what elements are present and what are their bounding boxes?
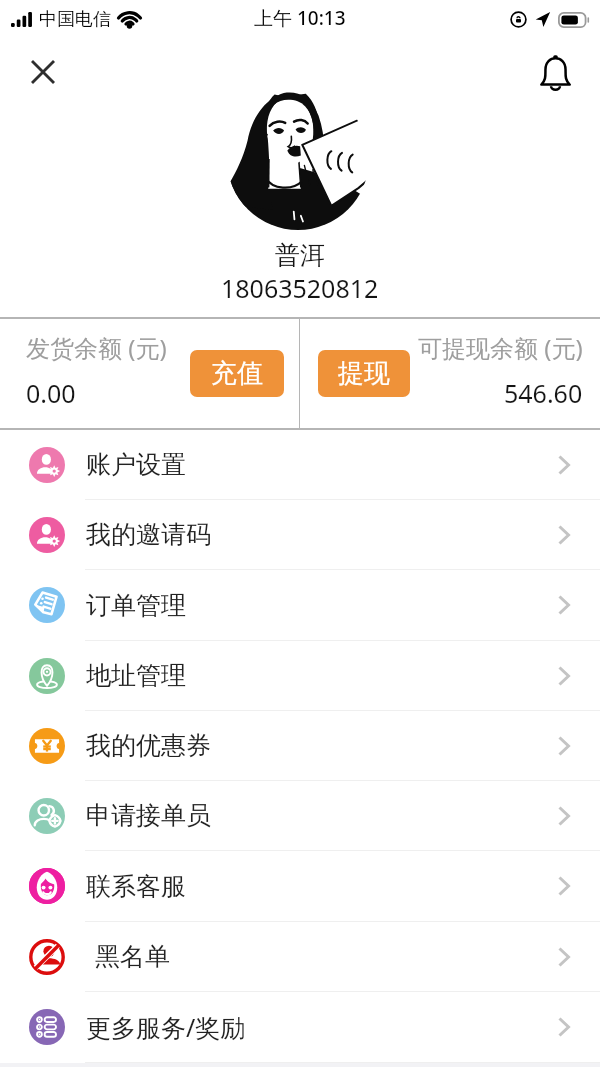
button[interactable]: 申请接单员 xyxy=(0,781,600,851)
staticText: 提现 xyxy=(338,357,390,390)
staticText: 地址管理 xyxy=(86,660,186,691)
button[interactable]: 提现 xyxy=(318,350,410,397)
button[interactable]: 充值 xyxy=(190,350,284,397)
staticText: 中国电信 xyxy=(39,8,111,31)
button[interactable]: 联系客服 xyxy=(0,851,600,922)
staticText: 账户设置 xyxy=(86,449,186,480)
button[interactable]: 地址管理 xyxy=(0,641,600,711)
staticText: 我的优惠券 xyxy=(86,730,211,761)
staticText: 我的邀请码 xyxy=(86,519,211,550)
staticText: 可提现余额 (元) xyxy=(418,331,583,364)
button[interactable]: 订单管理 xyxy=(0,570,600,641)
staticText: 普洱 xyxy=(275,240,325,271)
button[interactable]: Notifications xyxy=(529,46,581,98)
button[interactable]: 黑名单 xyxy=(0,922,600,992)
staticText: 发货余额 (元) xyxy=(26,331,167,364)
button[interactable]: 更多服务/奖励 xyxy=(0,992,600,1063)
staticText: 546.60 xyxy=(504,376,583,410)
staticText: 申请接单员 xyxy=(86,800,211,831)
staticText: 18063520812 xyxy=(221,271,379,305)
staticText: 订单管理 xyxy=(86,590,186,621)
staticText: 充值 xyxy=(211,357,263,390)
staticText: 联系客服 xyxy=(86,871,186,902)
staticText: 上午 10:13 xyxy=(254,5,346,31)
staticText: 0.00 xyxy=(26,376,76,410)
staticText: 更多服务/奖励 xyxy=(86,1010,246,1044)
button[interactable]: 我的邀请码 xyxy=(0,500,600,570)
button[interactable]: 我的优惠券 xyxy=(0,711,600,781)
button[interactable]: 账户设置 xyxy=(0,430,600,500)
button[interactable]: Close xyxy=(23,52,63,92)
staticText: 黑名单 xyxy=(95,941,170,972)
